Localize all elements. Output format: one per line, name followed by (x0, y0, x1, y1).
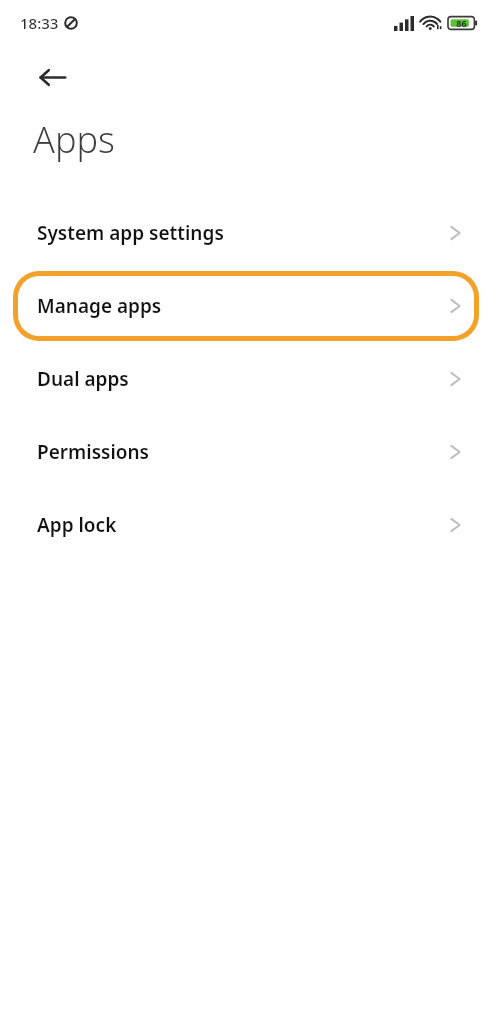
staticText: 18:33 (20, 13, 59, 33)
staticText: Apps (33, 115, 115, 164)
button[interactable]: Manage apps (0, 269, 492, 342)
staticText: Manage apps (37, 293, 449, 319)
button[interactable]: App lock (0, 488, 492, 561)
button[interactable]: Permissions (0, 415, 492, 488)
staticText: System app settings (37, 220, 449, 246)
staticText: Permissions (37, 439, 449, 465)
staticText: 86 (456, 17, 467, 29)
staticText: Dual apps (37, 366, 449, 392)
button[interactable]: Back (24, 49, 80, 105)
button[interactable]: Dual apps (0, 342, 492, 415)
staticText: App lock (37, 512, 449, 538)
button[interactable]: System app settings (0, 196, 492, 269)
